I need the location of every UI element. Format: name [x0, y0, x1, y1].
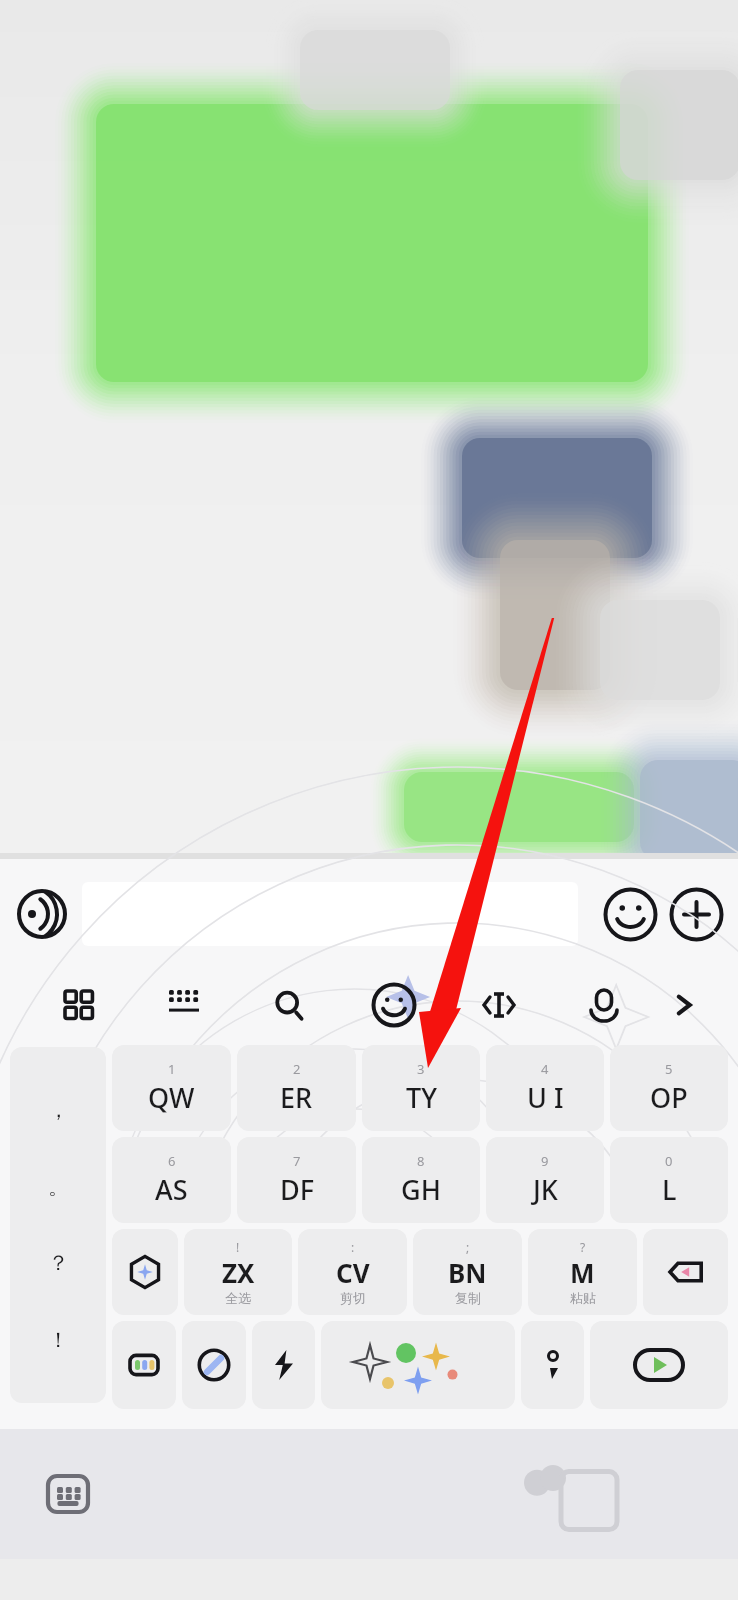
button[interactable]: Shortcut: [252, 1321, 315, 1409]
staticText: ;: [466, 1239, 470, 1255]
staticText: 0: [665, 1152, 673, 1170]
staticText: JK: [533, 1171, 558, 1208]
staticText: 剪切: [340, 1290, 366, 1306]
button[interactable]: Edit text: [446, 969, 551, 1041]
button[interactable]: Voice: [551, 969, 656, 1041]
button[interactable]: ;: [413, 1229, 522, 1315]
staticText: ?: [580, 1239, 586, 1255]
button[interactable]: 5: [610, 1045, 728, 1131]
button[interactable]: Voice input: [14, 886, 70, 942]
staticText: OP: [650, 1079, 688, 1116]
staticText: DF: [280, 1171, 314, 1208]
staticText: 全选: [225, 1290, 251, 1306]
staticText: GH: [401, 1171, 441, 1208]
button[interactable]: More tools: [656, 969, 712, 1041]
button[interactable]: More: [668, 886, 724, 942]
button[interactable]: Enter: [590, 1321, 728, 1409]
button[interactable]: 9: [486, 1137, 604, 1223]
staticText: ER: [280, 1079, 313, 1116]
staticText: !: [236, 1239, 240, 1255]
button[interactable]: Emoji: [602, 886, 658, 942]
staticText: QW: [148, 1079, 195, 1116]
button[interactable]: 6: [112, 1137, 231, 1223]
button[interactable]: 7: [237, 1137, 356, 1223]
staticText: ZX: [222, 1255, 255, 1290]
button[interactable]: ?: [528, 1229, 637, 1315]
staticText: TY: [406, 1079, 437, 1116]
staticText: M: [570, 1255, 595, 1290]
staticText: 粘贴: [570, 1290, 596, 1306]
staticText: ！: [48, 1327, 69, 1353]
staticText: 3: [417, 1060, 425, 1078]
staticText: AS: [155, 1171, 188, 1208]
button[interactable]: Handwriting: [182, 1321, 246, 1409]
staticText: :: [351, 1239, 355, 1255]
button[interactable]: Stickers: [321, 1321, 515, 1409]
staticText: ，: [48, 1097, 69, 1123]
button[interactable]: Keyboard layout: [131, 969, 236, 1041]
button[interactable]: Hide keyboard: [40, 1466, 96, 1522]
staticText: 7: [293, 1152, 301, 1170]
staticText: L: [662, 1171, 677, 1208]
button[interactable]: 3: [362, 1045, 480, 1131]
staticText: 4: [541, 1060, 549, 1078]
button[interactable]: :: [298, 1229, 407, 1315]
button[interactable]: 8: [362, 1137, 480, 1223]
button[interactable]: 2: [237, 1045, 356, 1131]
button[interactable]: 4: [486, 1045, 604, 1131]
button[interactable]: Language: [112, 1321, 176, 1409]
button[interactable]: 1: [112, 1045, 231, 1131]
staticText: 9: [541, 1152, 549, 1170]
staticText: ？: [48, 1250, 69, 1276]
staticText: 5: [665, 1060, 673, 1078]
staticText: 。: [48, 1174, 69, 1200]
button[interactable]: Delete: [643, 1229, 728, 1315]
button[interactable]: Symbols: [521, 1321, 584, 1409]
button[interactable]: 0: [610, 1137, 728, 1223]
staticText: 2: [293, 1060, 301, 1078]
button[interactable]: [82, 882, 578, 946]
button[interactable]: AI assistant: [112, 1229, 178, 1315]
button[interactable]: !: [184, 1229, 292, 1315]
staticText: U I: [527, 1079, 564, 1116]
button[interactable]: ，: [10, 1047, 106, 1403]
staticText: 8: [417, 1152, 425, 1170]
staticText: CV: [336, 1255, 370, 1290]
button[interactable]: Grid: [26, 969, 131, 1041]
staticText: BN: [448, 1255, 487, 1290]
staticText: 复制: [455, 1290, 481, 1306]
staticText: 6: [168, 1152, 176, 1170]
button[interactable]: Search: [236, 969, 341, 1041]
button[interactable]: Emoticons: [341, 969, 446, 1041]
staticText: 1: [168, 1060, 176, 1078]
